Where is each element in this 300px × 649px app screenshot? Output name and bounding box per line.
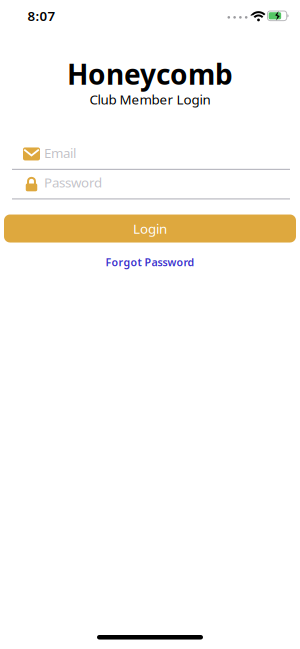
staticText: Honeycomb <box>67 55 233 92</box>
staticText: 8:07 <box>27 7 55 25</box>
staticText: Email <box>44 144 76 162</box>
staticText: Email <box>44 144 76 162</box>
staticText: Forgot Password <box>105 255 194 269</box>
staticText: Password <box>44 173 102 191</box>
staticText: Password <box>44 173 102 191</box>
textField[interactable]: Email <box>44 144 300 162</box>
staticText: Club Member Login <box>89 90 210 108</box>
staticText: Login <box>133 220 167 237</box>
button[interactable]: Forgot Password <box>105 255 194 269</box>
button[interactable]: Login <box>4 214 296 242</box>
secureTextField[interactable]: Password <box>44 173 300 191</box>
